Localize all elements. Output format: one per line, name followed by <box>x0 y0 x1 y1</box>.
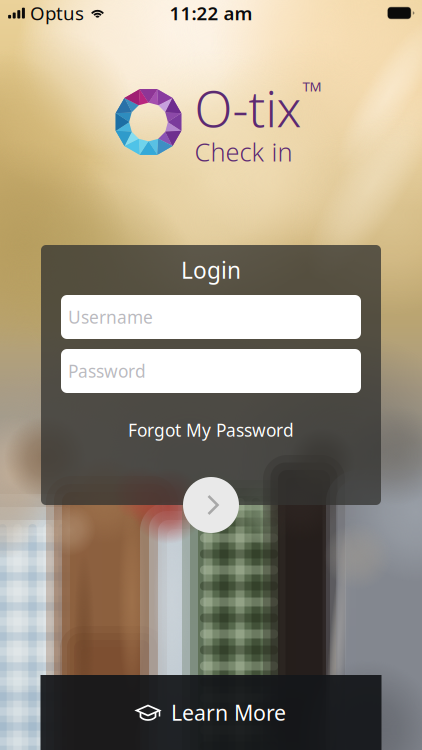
staticText: 11:22 am <box>169 1 252 25</box>
staticText: Check in <box>194 135 292 168</box>
staticText: O-tix <box>194 75 301 141</box>
staticText: TM <box>302 77 321 95</box>
staticText: Username <box>68 305 153 328</box>
button[interactable]: Sign in <box>183 477 239 533</box>
staticText: Learn More <box>171 698 286 727</box>
staticText: Optus <box>30 1 84 25</box>
button[interactable]: Learn More <box>40 675 381 750</box>
staticText: Login <box>181 255 241 285</box>
staticText: Password <box>68 359 146 382</box>
staticText: Forgot My Password <box>128 418 294 441</box>
